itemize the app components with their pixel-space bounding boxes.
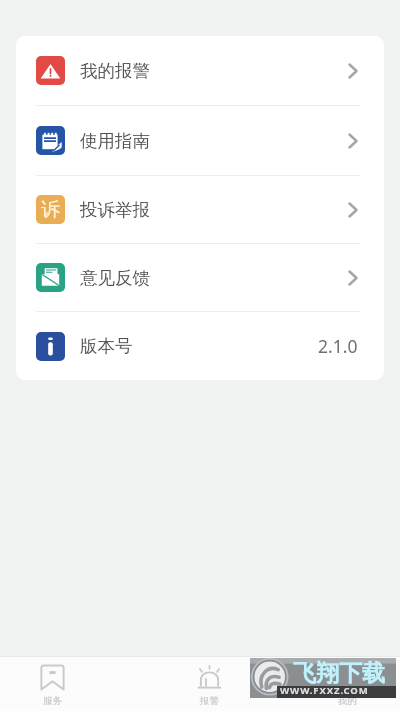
button[interactable]: 报警 bbox=[104, 657, 314, 711]
staticText: 报警 bbox=[200, 695, 219, 707]
staticText: 飞翔下载 bbox=[293, 659, 385, 688]
button[interactable]: 使用指南 bbox=[16, 106, 384, 175]
staticText: 意见反馈 bbox=[80, 267, 150, 289]
staticText: 诉 bbox=[41, 198, 60, 222]
staticText: 使用指南 bbox=[80, 130, 150, 152]
button[interactable]: 诉 bbox=[16, 176, 384, 243]
staticText: 投诉举报 bbox=[80, 199, 150, 221]
button[interactable]: 意见反馈 bbox=[16, 244, 384, 311]
button[interactable]: 服务 bbox=[0, 657, 104, 711]
staticText: 服务 bbox=[43, 695, 62, 707]
staticText: 我的 bbox=[338, 695, 357, 707]
staticText: 版本号 bbox=[80, 335, 133, 357]
staticText: 2.1.0 bbox=[318, 334, 358, 358]
button[interactable]: 版本号 bbox=[16, 312, 384, 380]
staticText: WWW.FXXZ.COM bbox=[280, 684, 369, 697]
staticText: 我的报警 bbox=[80, 60, 150, 82]
button[interactable]: 我的报警 bbox=[16, 36, 384, 105]
button[interactable]: 我的 bbox=[314, 657, 380, 711]
